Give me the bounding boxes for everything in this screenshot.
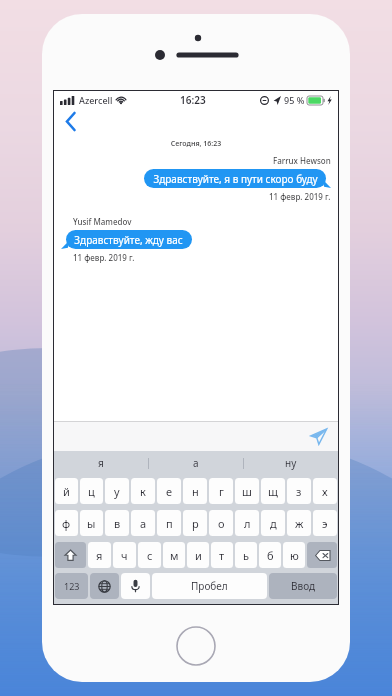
staticText: т: [219, 548, 225, 563]
staticText: о: [218, 516, 225, 531]
button[interactable]: у: [105, 478, 129, 504]
staticText: 11 февр. 2019 г.: [73, 252, 135, 263]
button[interactable]: а: [149, 451, 243, 475]
button[interactable]: ш: [235, 478, 259, 504]
button[interactable]: н: [183, 478, 207, 504]
staticText: ж: [295, 516, 304, 531]
staticText: д: [270, 516, 277, 531]
staticText: л: [244, 516, 251, 531]
staticText: я: [98, 456, 104, 470]
staticText: ь: [243, 548, 249, 563]
button[interactable]: к: [131, 478, 155, 504]
button[interactable]: щ: [261, 478, 285, 504]
staticText: я: [96, 548, 103, 563]
button[interactable]: т: [211, 542, 233, 568]
button[interactable]: с: [138, 542, 161, 568]
button[interactable]: и: [187, 542, 209, 568]
button[interactable]: Dictation: [121, 573, 150, 599]
staticText: Здравствуйте, я в пути скоро буду: [153, 172, 318, 186]
staticText: з: [296, 484, 302, 499]
staticText: с: [147, 548, 153, 563]
staticText: ф: [62, 516, 71, 531]
staticText: ч: [121, 548, 128, 563]
button[interactable]: б: [259, 542, 281, 568]
staticText: б: [267, 548, 274, 563]
button[interactable]: ч: [113, 542, 136, 568]
button[interactable]: п: [157, 510, 181, 536]
staticText: м: [170, 548, 179, 563]
staticText: ы: [87, 516, 96, 531]
staticText: а: [193, 456, 199, 470]
button[interactable]: ю: [283, 542, 305, 568]
staticText: ш: [242, 484, 252, 499]
staticText: ну: [285, 456, 297, 470]
staticText: Пробел: [191, 579, 228, 593]
staticText: е: [166, 484, 173, 499]
staticText: р: [192, 516, 199, 531]
button[interactable]: з: [287, 478, 311, 504]
staticText: 95 %: [284, 94, 305, 106]
button[interactable]: в: [105, 510, 129, 536]
staticText: ю: [290, 548, 299, 563]
button[interactable]: Пробел: [152, 573, 267, 599]
staticText: у: [114, 484, 120, 499]
button[interactable]: д: [261, 510, 285, 536]
button[interactable]: а: [131, 510, 155, 536]
button[interactable]: ц: [80, 478, 103, 504]
button[interactable]: Key: [307, 542, 337, 568]
button[interactable]: л: [235, 510, 259, 536]
staticText: Сегодня, 16:23: [61, 139, 331, 149]
staticText: Yusif Mamedov: [73, 216, 132, 227]
staticText: Здравствуйте, жду вас: [74, 233, 183, 247]
button[interactable]: я: [88, 542, 111, 568]
button[interactable]: ы: [80, 510, 103, 536]
button[interactable]: Home: [176, 626, 216, 666]
staticText: Ввод: [291, 579, 316, 593]
button[interactable]: Здравствуйте, жду вас: [61, 230, 192, 249]
staticText: ц: [88, 484, 95, 499]
button[interactable]: 123: [55, 573, 88, 599]
button[interactable]: р: [183, 510, 207, 536]
button[interactable]: ф: [55, 510, 78, 536]
button[interactable]: Key: [55, 542, 86, 568]
button[interactable]: м: [163, 542, 185, 568]
button[interactable]: я: [54, 451, 148, 475]
button[interactable]: Send: [306, 424, 330, 448]
staticText: Farrux Hewson: [273, 155, 331, 166]
staticText: Azercell: [79, 94, 113, 106]
staticText: й: [63, 484, 70, 499]
button[interactable]: Switch language: [90, 573, 119, 599]
button[interactable]: о: [209, 510, 233, 536]
staticText: щ: [268, 484, 278, 499]
staticText: 16:23: [180, 93, 206, 107]
button[interactable]: ну: [244, 451, 338, 475]
staticText: э: [322, 516, 328, 531]
staticText: 123: [64, 580, 80, 592]
button[interactable]: э: [313, 510, 337, 536]
staticText: г: [219, 484, 224, 499]
button[interactable]: Ввод: [269, 573, 337, 599]
button[interactable]: е: [157, 478, 181, 504]
staticText: и: [195, 548, 202, 563]
button[interactable]: х: [313, 478, 337, 504]
button[interactable]: ж: [287, 510, 311, 536]
staticText: 11 февр. 2019 г.: [269, 191, 331, 202]
button[interactable]: й: [55, 478, 78, 504]
staticText: в: [114, 516, 121, 531]
button[interactable]: г: [209, 478, 233, 504]
button[interactable]: Back: [58, 109, 84, 133]
button[interactable]: Здравствуйте, я в пути скоро буду: [144, 169, 331, 188]
staticText: н: [192, 484, 199, 499]
staticText: х: [322, 484, 328, 499]
staticText: п: [166, 516, 173, 531]
staticText: к: [140, 484, 146, 499]
button[interactable]: ь: [235, 542, 257, 568]
staticText: а: [140, 516, 147, 531]
